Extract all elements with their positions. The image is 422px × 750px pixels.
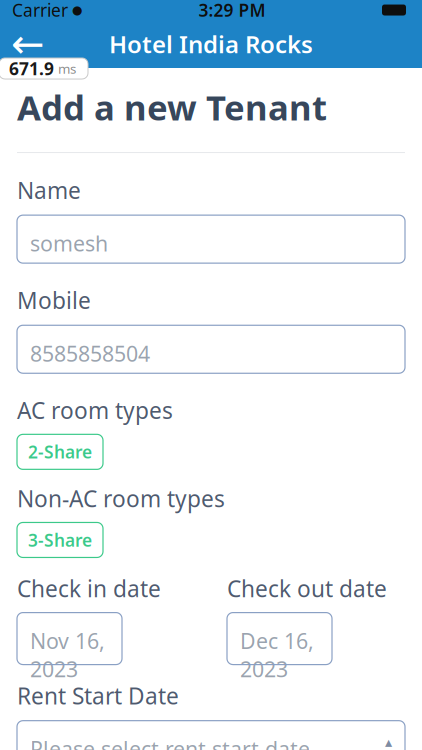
staticText: Dec 16, 2023 (240, 627, 314, 683)
staticText: AC room types (17, 395, 173, 425)
button[interactable]: 2-Share (17, 434, 103, 469)
button[interactable]: Nov 16, 2023 (17, 613, 122, 665)
staticText: Check in date (17, 573, 161, 604)
staticText: ms (58, 60, 76, 77)
staticText: Please select rent start date (30, 735, 310, 750)
button[interactable]: Dec 16, 2023 (227, 613, 332, 665)
staticText: 671.9 (9, 57, 54, 80)
staticText: Mobile (17, 285, 91, 315)
button[interactable]: somesh (17, 215, 405, 263)
staticText: 3-Share (28, 528, 92, 551)
staticText: Check out date (227, 573, 387, 604)
staticText: Add a new Tenant (17, 84, 327, 130)
staticText: ▲ (385, 737, 392, 748)
staticText: ● (68, 3, 82, 17)
staticText: somesh (30, 229, 108, 257)
staticText: Nov 16, 2023 (30, 627, 105, 683)
staticText: Non-AC room types (17, 483, 225, 513)
staticText: 3:29 PM (198, 0, 265, 21)
staticText: Hotel India Rocks (109, 28, 313, 60)
staticText: Rent Start Date (17, 681, 179, 711)
staticText: 2-Share (28, 440, 92, 463)
button[interactable]: 8585858504 (17, 325, 405, 373)
button[interactable]: 3-Share (17, 522, 103, 557)
staticText: 8585858504 (30, 339, 150, 367)
button[interactable]: Please select rent start date (17, 721, 405, 750)
staticText: ← (11, 21, 45, 67)
staticText: Name (17, 175, 81, 205)
button[interactable]: Back (0, 21, 56, 67)
staticText: Carrier (12, 0, 68, 21)
